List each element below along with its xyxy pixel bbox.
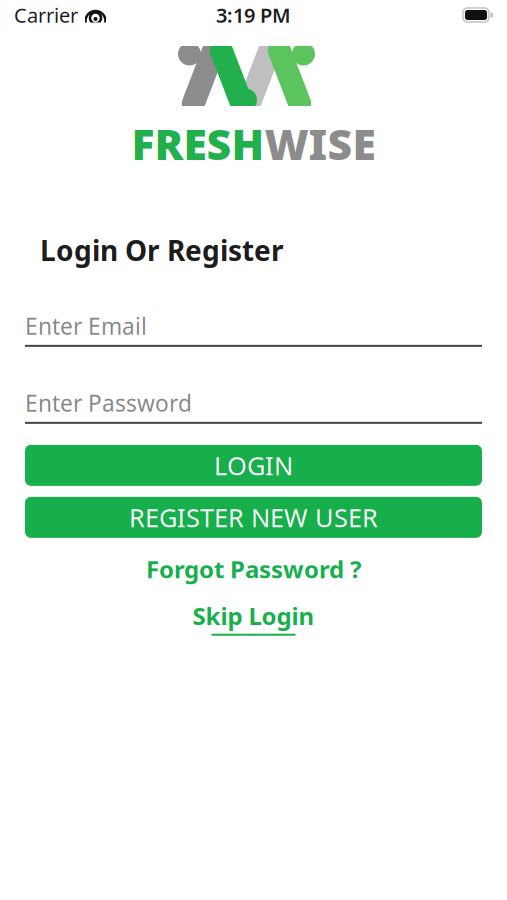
- staticText: Enter Password: [25, 388, 192, 418]
- button[interactable]: Skip Login: [0, 600, 507, 636]
- staticText: Enter Email: [25, 311, 147, 341]
- staticText: 3:19 PM: [216, 2, 291, 28]
- staticText: LOGIN: [214, 448, 293, 482]
- button[interactable]: Forgot Password ?: [0, 555, 507, 583]
- staticText: Login Or Register: [40, 232, 284, 269]
- staticText: REGISTER NEW USER: [129, 500, 378, 534]
- staticText: Skip Login: [192, 600, 314, 632]
- button[interactable]: REGISTER NEW USER: [25, 497, 482, 538]
- staticText: Carrier: [14, 2, 78, 28]
- staticText: Forgot Password ?: [146, 553, 361, 585]
- staticText: WISE: [264, 115, 375, 172]
- button[interactable]: LOGIN: [25, 445, 482, 486]
- staticText: FRESH: [131, 115, 264, 172]
